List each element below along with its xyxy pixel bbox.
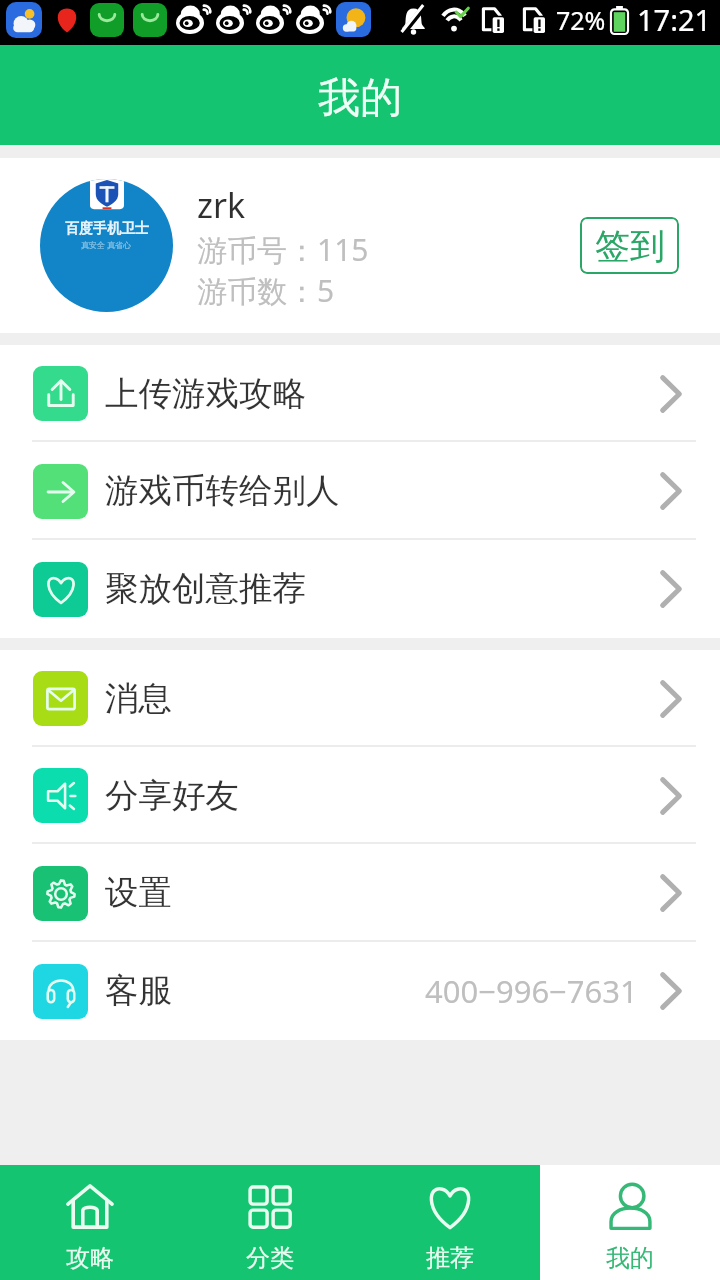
button[interactable]: 攻略 — [0, 1165, 180, 1280]
staticText: 推荐 — [426, 1243, 474, 1273]
button[interactable]: 游戏币转给别人 — [0, 442, 720, 540]
staticText: 设置 — [105, 872, 172, 914]
staticText: 400−996−7631 — [425, 970, 638, 1012]
staticText: 我的 — [318, 72, 402, 125]
button[interactable]: 推荐 — [360, 1165, 540, 1280]
staticText: 我的 — [606, 1243, 654, 1273]
staticText: 72% — [556, 3, 606, 37]
staticText: 消息 — [105, 678, 172, 720]
button[interactable]: 签到 — [580, 217, 679, 274]
button[interactable]: 分享好友 — [0, 747, 720, 844]
staticText: 百度手机卫士 — [65, 220, 149, 238]
staticText: zrk — [197, 182, 246, 228]
button[interactable]: 百度手机卫士 — [0, 158, 720, 333]
staticText: 游币号：115 — [197, 229, 369, 270]
button[interactable]: 上传游戏攻略 — [0, 345, 720, 442]
staticText: 17:21 — [637, 0, 712, 39]
button[interactable]: 我的 — [540, 1165, 720, 1280]
staticText: 真安全 真省心 — [81, 239, 132, 250]
staticText: 签到 — [595, 224, 665, 268]
button[interactable]: 聚放创意推荐 — [0, 540, 720, 638]
button[interactable]: 设置 — [0, 844, 720, 942]
staticText: 上传游戏攻略 — [105, 373, 306, 415]
button[interactable]: 消息 — [0, 650, 720, 747]
staticText: 聚放创意推荐 — [105, 568, 306, 610]
button[interactable]: 客服 — [0, 942, 720, 1040]
staticText: 客服 — [105, 970, 172, 1012]
staticText: 攻略 — [66, 1243, 114, 1273]
staticText: 游戏币转给别人 — [105, 470, 340, 512]
staticText: 分享好友 — [105, 775, 239, 817]
staticText: 分类 — [246, 1243, 294, 1273]
staticText: 游币数：5 — [197, 270, 335, 311]
button[interactable]: 分类 — [180, 1165, 360, 1280]
